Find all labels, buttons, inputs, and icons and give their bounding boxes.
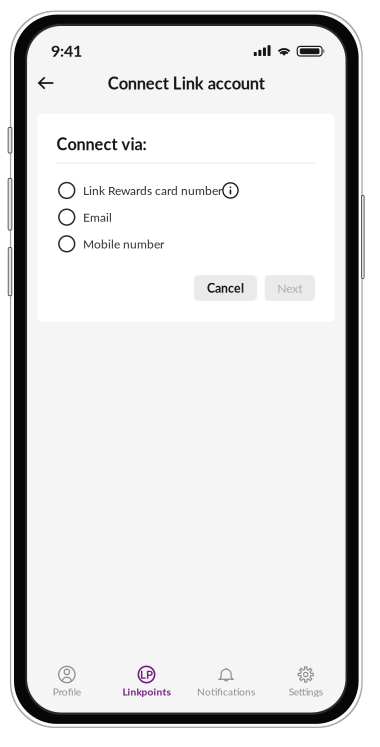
staticText: LP (140, 668, 153, 681)
staticText: Connect Link account (108, 73, 265, 93)
staticText: Notifications (197, 685, 255, 698)
staticText: Next (277, 281, 302, 295)
button[interactable]: LP (107, 665, 186, 700)
button[interactable]: Profile (27, 665, 107, 700)
staticText: Settings (289, 685, 323, 698)
button[interactable]: Mobile number (59, 230, 316, 257)
button[interactable]: Next (265, 275, 315, 301)
staticText: Cancel (207, 281, 244, 295)
button[interactable]: Link Rewards card number (59, 177, 316, 204)
staticText: 9:41 (51, 41, 82, 60)
button[interactable]: Settings (266, 665, 345, 700)
button[interactable]: Back (31, 71, 61, 95)
button[interactable]: Email (59, 204, 316, 230)
staticText: Connect via: (56, 134, 146, 154)
button[interactable]: Notifications (186, 665, 266, 700)
staticText: Mobile number (83, 237, 164, 251)
staticText: Link Rewards card number (83, 183, 222, 198)
staticText: Linkpoints (122, 685, 170, 698)
button[interactable]: Cancel (194, 275, 257, 301)
staticText: Profile (53, 685, 81, 698)
staticText: Email (83, 210, 112, 224)
